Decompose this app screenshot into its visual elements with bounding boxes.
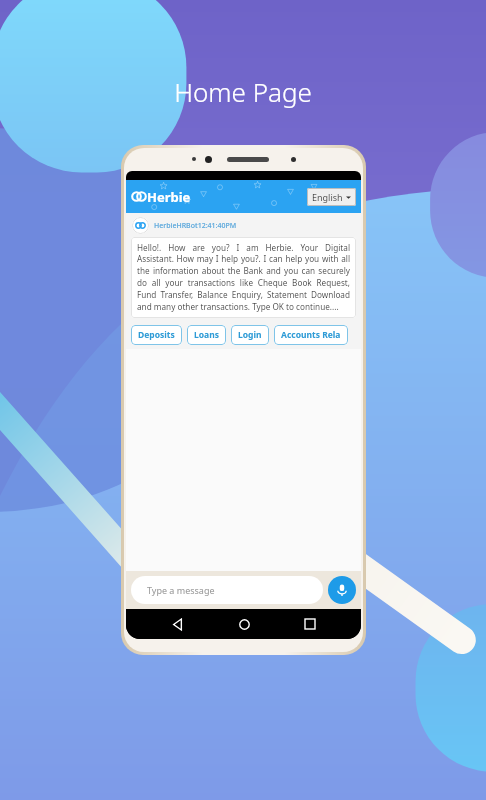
button[interactable]: English <box>307 188 356 206</box>
staticText: Herbie <box>147 188 191 206</box>
button[interactable]: Back <box>162 609 192 639</box>
staticText: Home Page <box>0 74 486 109</box>
staticText: Type a message <box>147 584 215 596</box>
button[interactable]: Deposits <box>131 325 182 345</box>
button[interactable]: Login <box>231 325 269 345</box>
staticText: Login <box>238 329 262 341</box>
button[interactable]: Accounts Rela <box>274 325 348 345</box>
button[interactable]: Home <box>229 609 259 639</box>
staticText: Loans <box>194 329 219 341</box>
staticText: HerbieHRBot12:41:40PM <box>154 221 237 231</box>
staticText: English <box>312 191 343 203</box>
button[interactable]: Type a message <box>131 576 323 604</box>
staticText: Hello!. How are you? I am Herbie. Your D… <box>137 242 350 313</box>
button[interactable]: Voice input <box>328 576 356 604</box>
staticText: Accounts Rela <box>281 329 341 341</box>
button[interactable]: Loans <box>187 325 226 345</box>
button[interactable]: Recents <box>295 609 325 639</box>
staticText: Deposits <box>138 329 175 341</box>
